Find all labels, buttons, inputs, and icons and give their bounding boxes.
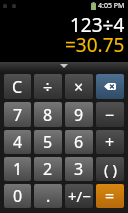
staticText: +	[105, 131, 115, 153]
button[interactable]: 4	[4, 130, 31, 154]
staticText: 8	[43, 104, 53, 126]
button[interactable]: 6	[65, 130, 93, 154]
staticText: 1	[13, 158, 23, 180]
staticText: 7	[13, 104, 23, 126]
staticText: ( )	[104, 159, 117, 179]
staticText: =	[105, 185, 115, 207]
staticText: C	[12, 76, 23, 98]
staticText: 123÷4	[70, 12, 125, 38]
button[interactable]: +/−	[65, 184, 93, 208]
button[interactable]: 5	[34, 130, 62, 154]
button[interactable]: 0	[4, 184, 31, 208]
button[interactable]: =	[96, 184, 124, 208]
staticText: 2	[43, 158, 53, 180]
staticText: −	[105, 104, 115, 126]
button[interactable]: ÷	[34, 74, 62, 99]
staticText: 4:05 PM	[98, 1, 125, 11]
button[interactable]: ( )	[96, 157, 124, 181]
button[interactable]: Delete	[96, 74, 124, 99]
staticText: ÷	[43, 76, 53, 98]
staticText: 9	[74, 104, 84, 126]
button[interactable]: 7	[4, 102, 31, 127]
button[interactable]: 2	[34, 157, 62, 181]
staticText: 5	[43, 131, 53, 153]
button[interactable]: Collapse keypad	[0, 62, 128, 72]
button[interactable]: −	[96, 102, 124, 127]
button[interactable]: .	[34, 184, 62, 208]
button[interactable]: 8	[34, 102, 62, 127]
button[interactable]: 3	[65, 157, 93, 181]
button[interactable]: 1	[4, 157, 31, 181]
button[interactable]: ×	[65, 74, 93, 99]
staticText: 4	[13, 131, 23, 153]
button[interactable]: 9	[65, 102, 93, 127]
staticText: =30.75	[65, 32, 125, 58]
staticText: 3	[74, 158, 84, 180]
staticText: 6	[74, 131, 84, 153]
staticText: 0	[13, 185, 23, 207]
button[interactable]: C	[4, 74, 31, 99]
staticText: ×	[74, 76, 84, 98]
staticText: .	[46, 185, 51, 207]
staticText: +/−	[68, 186, 91, 206]
button[interactable]: +	[96, 130, 124, 154]
